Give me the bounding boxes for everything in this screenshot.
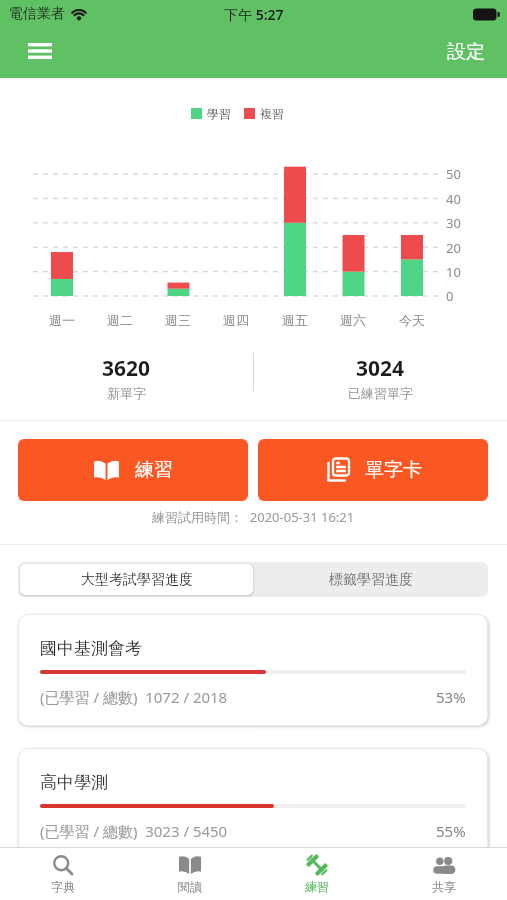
staticText: 標籤學習進度 xyxy=(329,571,413,589)
staticText: 3024 xyxy=(356,354,405,380)
staticText: 週三 xyxy=(165,312,191,328)
staticText: 學習 xyxy=(207,106,231,121)
staticText: 設定 xyxy=(447,40,485,64)
button[interactable] xyxy=(16,33,64,73)
staticText: 閱讀 xyxy=(178,879,202,894)
staticText: 練習 xyxy=(305,879,329,894)
staticText: 電信業者 xyxy=(9,5,65,23)
button[interactable]: 高中學測 xyxy=(18,748,488,860)
staticText: 字典 xyxy=(51,879,75,894)
button[interactable]: 字典 xyxy=(0,848,126,900)
staticText: 週一 xyxy=(49,312,75,328)
staticText: 週五 xyxy=(282,312,308,328)
staticText: 單字卡 xyxy=(365,458,422,482)
staticText: 練習試用時間： 2020-05-31 16:21 xyxy=(152,508,355,526)
staticText: 20 xyxy=(446,239,461,257)
staticText: 週二 xyxy=(107,312,133,328)
staticText: 3620 xyxy=(102,354,151,380)
staticText: 練習 xyxy=(135,458,173,482)
staticText: 國中基測會考 xyxy=(40,638,142,659)
staticText: 50 xyxy=(446,165,461,183)
button[interactable]: 共享 xyxy=(380,848,507,900)
staticText: 53% xyxy=(436,687,466,707)
button[interactable]: 國中基測會考 xyxy=(18,614,488,726)
staticText: 今天 xyxy=(399,312,425,328)
staticText: 30 xyxy=(446,214,461,232)
button[interactable]: 標籤學習進度 xyxy=(253,562,488,597)
staticText: (已學習 / 總數) 3023 / 5450 xyxy=(40,821,228,841)
button[interactable]: 單字卡 xyxy=(258,439,488,501)
staticText: 新單字 xyxy=(107,385,146,401)
staticText: 10 xyxy=(446,263,461,281)
staticText: 40 xyxy=(446,190,461,208)
staticText: 週六 xyxy=(340,312,366,328)
staticText: 週四 xyxy=(223,312,249,328)
staticText: 下午 5:27 xyxy=(224,5,284,24)
staticText: (已學習 / 總數) 1072 / 2018 xyxy=(40,687,228,707)
staticText: 高中學測 xyxy=(40,772,108,793)
staticText: 0 xyxy=(446,287,454,305)
button[interactable]: 大型考試學習進度 xyxy=(20,564,253,595)
button[interactable]: 設定 xyxy=(447,40,485,64)
staticText: 複習 xyxy=(260,106,284,121)
button[interactable]: 練習 xyxy=(18,439,248,501)
staticText: 共享 xyxy=(432,879,456,894)
staticText: 大型考試學習進度 xyxy=(81,571,193,589)
button[interactable]: 閱讀 xyxy=(126,848,253,900)
staticText: 已練習單字 xyxy=(348,385,413,401)
staticText: 55% xyxy=(436,821,466,841)
button[interactable]: 練習 xyxy=(253,848,380,900)
